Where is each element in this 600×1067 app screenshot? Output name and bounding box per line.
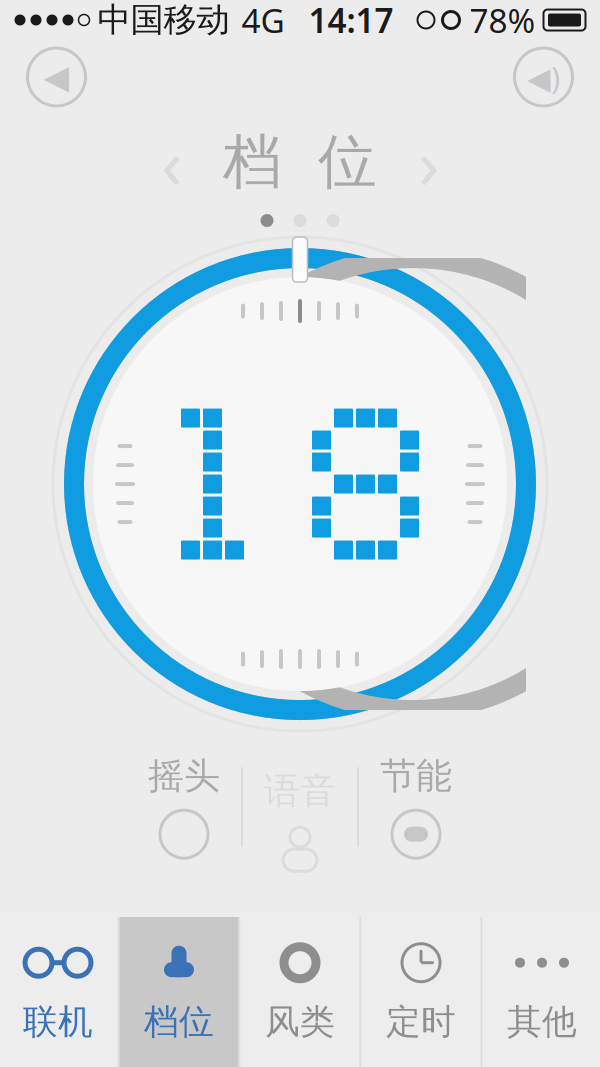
- staticText: ◀): [527, 57, 560, 97]
- button[interactable]: 节能: [359, 745, 473, 869]
- button[interactable]: 定时: [361, 917, 480, 1067]
- button[interactable]: 摇头: [127, 745, 241, 869]
- staticText: 78%: [469, 0, 535, 42]
- staticText: 4G: [241, 0, 284, 42]
- button[interactable]: Previous mode: [143, 134, 199, 190]
- staticText: 中国移动: [97, 0, 229, 40]
- button[interactable]: 风类: [240, 917, 359, 1067]
- staticText: 联机: [23, 1001, 93, 1043]
- staticText: 风类: [265, 1001, 335, 1043]
- button[interactable]: 档位: [119, 917, 238, 1067]
- button[interactable]: Next mode: [400, 134, 456, 190]
- staticText: ◀: [43, 58, 69, 96]
- staticText: 档位: [144, 1001, 214, 1043]
- staticText: 定时: [386, 1001, 456, 1043]
- button[interactable]: 语音: [243, 745, 357, 869]
- staticText: 节能: [380, 754, 452, 798]
- button[interactable]: 其他: [482, 917, 600, 1067]
- staticText: 摇头: [148, 754, 220, 798]
- staticText: ›: [418, 116, 439, 208]
- staticText: 其他: [507, 1001, 577, 1043]
- button[interactable]: Sound: [510, 44, 576, 110]
- staticText: 语音: [264, 769, 336, 813]
- staticText: ‹: [161, 116, 182, 208]
- button[interactable]: 联机: [0, 917, 117, 1067]
- staticText: 14:17: [308, 0, 393, 42]
- button[interactable]: Back: [23, 44, 89, 110]
- staticText: 档 位: [223, 126, 377, 198]
